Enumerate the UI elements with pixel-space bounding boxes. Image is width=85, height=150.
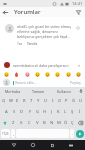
staticText: M — [57, 120, 61, 126]
button[interactable]: Ana ekran — [28, 140, 38, 150]
button[interactable]: Y — [35, 96, 42, 105]
button[interactable]: Geri — [0, 7, 10, 17]
staticText: Q — [2, 98, 6, 104]
staticText: F — [29, 109, 32, 115]
button[interactable]: Gönder — [76, 130, 84, 138]
button[interactable]: Emoji 1 — [13, 71, 20, 78]
button[interactable]: V — [33, 118, 41, 127]
button[interactable]: N — [48, 118, 55, 127]
staticText: H — [43, 109, 47, 115]
button[interactable]: K — [55, 107, 62, 116]
button[interactable]: D — [18, 107, 26, 116]
button[interactable]: Geri — [9, 140, 19, 150]
button[interactable]: W — [7, 96, 14, 105]
button[interactable]: Klavye — [66, 140, 76, 150]
button[interactable]: Beğen — [74, 24, 82, 32]
button[interactable]: rammblaaticca'i daha yanıtlıyorsun — [0, 60, 85, 70]
staticText: ohaEL çok güzel bir video olmuş ellerine… — [17, 24, 72, 39]
button[interactable]: I — [49, 96, 56, 105]
button[interactable]: P — [63, 96, 70, 105]
button[interactable]: Emoji 2 — [24, 71, 31, 78]
button[interactable]: Emoji 4 — [44, 71, 51, 78]
button[interactable]: S — [10, 107, 18, 116]
button[interactable]: Sesle yaz — [77, 87, 85, 95]
button[interactable]: B — [41, 118, 48, 127]
button[interactable]: Ç — [69, 118, 76, 127]
button[interactable]: C — [25, 118, 33, 127]
staticText: K — [57, 109, 60, 115]
staticText: . — [72, 131, 73, 136]
staticText: T — [30, 98, 33, 104]
staticText: Tamam — [32, 89, 45, 94]
button[interactable]: Q — [1, 96, 7, 105]
button[interactable]: J — [48, 107, 55, 116]
staticText: , — [13, 131, 14, 136]
button[interactable]: R — [21, 96, 28, 105]
staticText: W — [9, 98, 13, 104]
staticText: Yorumlar — [14, 8, 41, 16]
staticText: O — [58, 98, 62, 104]
staticText: Ç — [71, 120, 74, 126]
button[interactable]: Emoji 6 — [65, 71, 72, 78]
button[interactable]: Son uygulamalar — [47, 140, 57, 150]
staticText: P — [65, 98, 68, 104]
button[interactable]: Paylaş — [69, 80, 82, 85]
button[interactable]: Ü — [77, 96, 84, 105]
staticText: C — [28, 120, 31, 126]
button[interactable]: Filtrele — [73, 7, 83, 17]
button[interactable]: F — [26, 107, 34, 116]
button[interactable]: Yorum ekle... — [13, 80, 69, 85]
staticText: Ö — [64, 120, 68, 126]
staticText: Ğ — [72, 98, 76, 104]
staticText: Z — [12, 120, 15, 126]
button[interactable]: Z — [9, 118, 17, 127]
button[interactable]: Kullanıcı — [51, 87, 77, 95]
button[interactable]: G — [34, 107, 41, 116]
button[interactable]: Ğ — [70, 96, 77, 105]
button[interactable]: T — [28, 96, 35, 105]
staticText: E — [16, 98, 19, 104]
button[interactable]: O — [56, 96, 63, 105]
button[interactable]: A — [2, 107, 10, 116]
staticText: Merhaba — [5, 89, 21, 94]
button[interactable]: Ö — [62, 118, 69, 127]
button[interactable]: Merhaba — [0, 87, 25, 95]
button[interactable]: Tamam — [25, 87, 51, 95]
staticText: X — [20, 120, 23, 126]
button[interactable]: Emoji 7 — [75, 71, 82, 78]
button[interactable]: ohaEL çok güzel bir video olmuş ellerine… — [0, 17, 85, 46]
button[interactable]: H — [41, 107, 48, 116]
staticText: ?123 — [2, 132, 9, 136]
button[interactable]: L — [62, 107, 69, 116]
button[interactable]: E — [14, 96, 21, 105]
staticText: 1sa — [17, 42, 23, 46]
staticText: N — [50, 120, 54, 126]
button[interactable]: ?123 — [1, 129, 10, 138]
button[interactable]: Nokta — [70, 129, 74, 138]
button[interactable]: Ş — [69, 107, 76, 116]
button[interactable]: Emoji 3 — [34, 71, 41, 78]
button[interactable]: Shift — [1, 118, 9, 127]
staticText: R — [23, 98, 26, 104]
button[interactable]: Emoji 0 — [3, 71, 10, 78]
staticText: Yorum ekle... — [15, 80, 37, 85]
button[interactable]: Yanıtla — [27, 42, 38, 46]
button[interactable]: Virgül — [11, 129, 15, 138]
staticText: 14:41 — [72, 1, 83, 6]
staticText: Y — [37, 98, 40, 104]
button[interactable]: X — [17, 118, 25, 127]
button[interactable]: Emoji 5 — [54, 71, 61, 78]
staticText: A — [5, 109, 8, 115]
button[interactable]: Sil — [76, 118, 84, 127]
staticText: I — [52, 98, 54, 104]
button[interactable]: İ — [76, 107, 83, 116]
staticText: Ş — [71, 109, 74, 115]
button[interactable]: U — [42, 96, 49, 105]
staticText: İ — [79, 109, 81, 115]
button[interactable]: M — [55, 118, 62, 127]
staticText: rammblaaticca'i daha yanıtlıyorsun — [13, 63, 76, 68]
staticText: D — [20, 109, 24, 115]
staticText: Kullanıcı — [57, 89, 72, 94]
staticText: × — [78, 63, 81, 68]
